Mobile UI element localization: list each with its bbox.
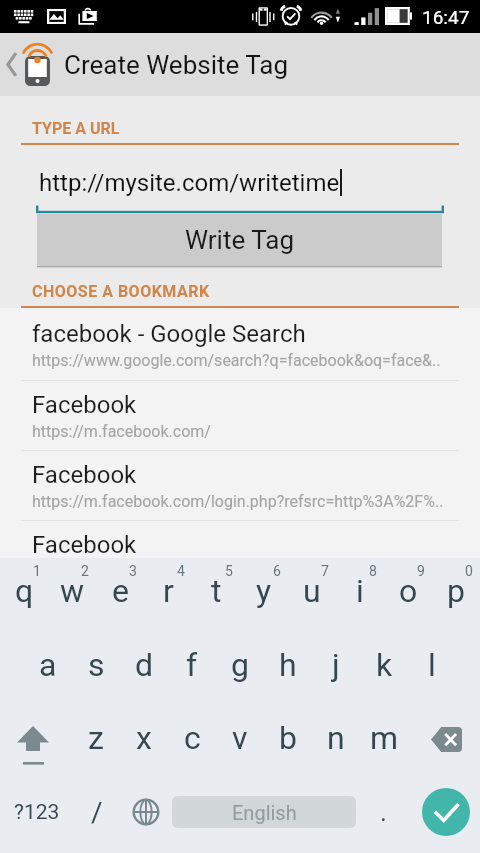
staticText: u (303, 572, 321, 610)
staticText: d (135, 646, 154, 684)
button[interactable]: g (216, 634, 264, 696)
button[interactable]: Shift (0, 704, 68, 772)
staticText: 4 (177, 563, 185, 579)
staticText: c (184, 719, 201, 757)
button[interactable]: e (96, 560, 144, 622)
button[interactable]: w (48, 560, 96, 622)
staticText: b (279, 719, 297, 757)
button[interactable]: Write Tag (37, 214, 442, 268)
button[interactable]: t (192, 560, 240, 622)
staticText: x (136, 719, 152, 757)
staticText: Create Website Tag (64, 50, 289, 80)
staticText: TYPE A URL (32, 119, 120, 138)
button[interactable]: English (172, 796, 356, 828)
staticText: k (376, 646, 393, 684)
button[interactable]: j (312, 634, 360, 696)
staticText: h (279, 646, 297, 684)
button[interactable]: m (360, 707, 408, 769)
button[interactable]: p (432, 560, 480, 622)
staticText: w (60, 572, 85, 610)
staticText: https://m.facebook.com/login.php?refsrc=… (32, 492, 444, 511)
staticText: ?123 (14, 800, 60, 825)
staticText: r (163, 572, 174, 610)
button[interactable]: Enter (422, 788, 470, 836)
staticText: 16:47 (422, 6, 470, 28)
button[interactable]: facebook - Google Search (0, 308, 480, 381)
staticText: Write Tag (185, 225, 294, 255)
staticText: p (447, 572, 465, 610)
button[interactable]: q (0, 560, 48, 622)
staticText: g (231, 646, 249, 684)
staticText: 0 (465, 563, 473, 579)
button[interactable]: z (72, 707, 120, 769)
staticText: 2 (81, 563, 89, 579)
button[interactable]: Back (0, 33, 480, 96)
staticText: facebook - Google Search (32, 320, 306, 348)
staticText: 9 (417, 563, 425, 579)
staticText: q (15, 572, 34, 610)
staticText: Facebook (32, 461, 137, 489)
other: Back (5, 51, 18, 78)
staticText: 1 (33, 563, 41, 579)
staticText: t (211, 572, 222, 610)
staticText: 7 (321, 563, 329, 579)
staticText: l (428, 646, 436, 684)
staticText: 3 (129, 563, 137, 579)
staticText: j (332, 646, 340, 684)
staticText: https://m.facebook.com/ (32, 422, 211, 441)
button[interactable]: x (120, 707, 168, 769)
staticText: z (88, 719, 104, 757)
button[interactable]: a (24, 634, 72, 696)
button[interactable]: n (312, 707, 360, 769)
button[interactable]: Facebook (0, 521, 480, 558)
staticText: o (399, 572, 418, 610)
staticText: 6 (273, 563, 281, 579)
button[interactable]: h (264, 634, 312, 696)
staticText: Facebook (32, 531, 137, 558)
button[interactable]: v (216, 707, 264, 769)
button[interactable]: l (408, 634, 456, 696)
staticText: English (232, 801, 297, 824)
button[interactable]: d (120, 634, 168, 696)
staticText: m (370, 719, 399, 757)
button[interactable]: Backspace (412, 704, 480, 772)
staticText: CHOOSE A BOOKMARK (32, 282, 210, 301)
staticText: http://mysite.com/writetime (39, 169, 340, 197)
button[interactable]: . (356, 776, 411, 848)
button[interactable]: Change language (120, 776, 172, 848)
button[interactable]: s (72, 634, 120, 696)
button[interactable]: o (384, 560, 432, 622)
button[interactable]: f (168, 634, 216, 696)
staticText: i (356, 572, 364, 610)
staticText: https://www.google.com/search?q=facebook… (32, 351, 441, 370)
button[interactable]: Facebook (0, 381, 480, 451)
staticText: s (88, 646, 105, 684)
staticText: y (256, 572, 272, 610)
staticText: 8 (369, 563, 377, 579)
staticText: / (91, 796, 103, 829)
button[interactable]: i (336, 560, 384, 622)
staticText: 5 (225, 563, 233, 579)
button[interactable]: y (240, 560, 288, 622)
button[interactable]: u (288, 560, 336, 622)
staticText: n (327, 719, 345, 757)
staticText: f (186, 646, 198, 684)
staticText: . (380, 797, 387, 827)
button[interactable]: b (264, 707, 312, 769)
staticText: Facebook (32, 391, 137, 419)
button[interactable]: ?123 (0, 776, 74, 848)
staticText: e (112, 572, 129, 610)
button[interactable]: r (144, 560, 192, 622)
button[interactable]: Facebook (0, 451, 480, 521)
staticText: a (39, 646, 57, 684)
staticText: v (232, 719, 248, 757)
button[interactable]: c (168, 707, 216, 769)
button[interactable]: k (360, 634, 408, 696)
button[interactable]: / (74, 776, 120, 848)
